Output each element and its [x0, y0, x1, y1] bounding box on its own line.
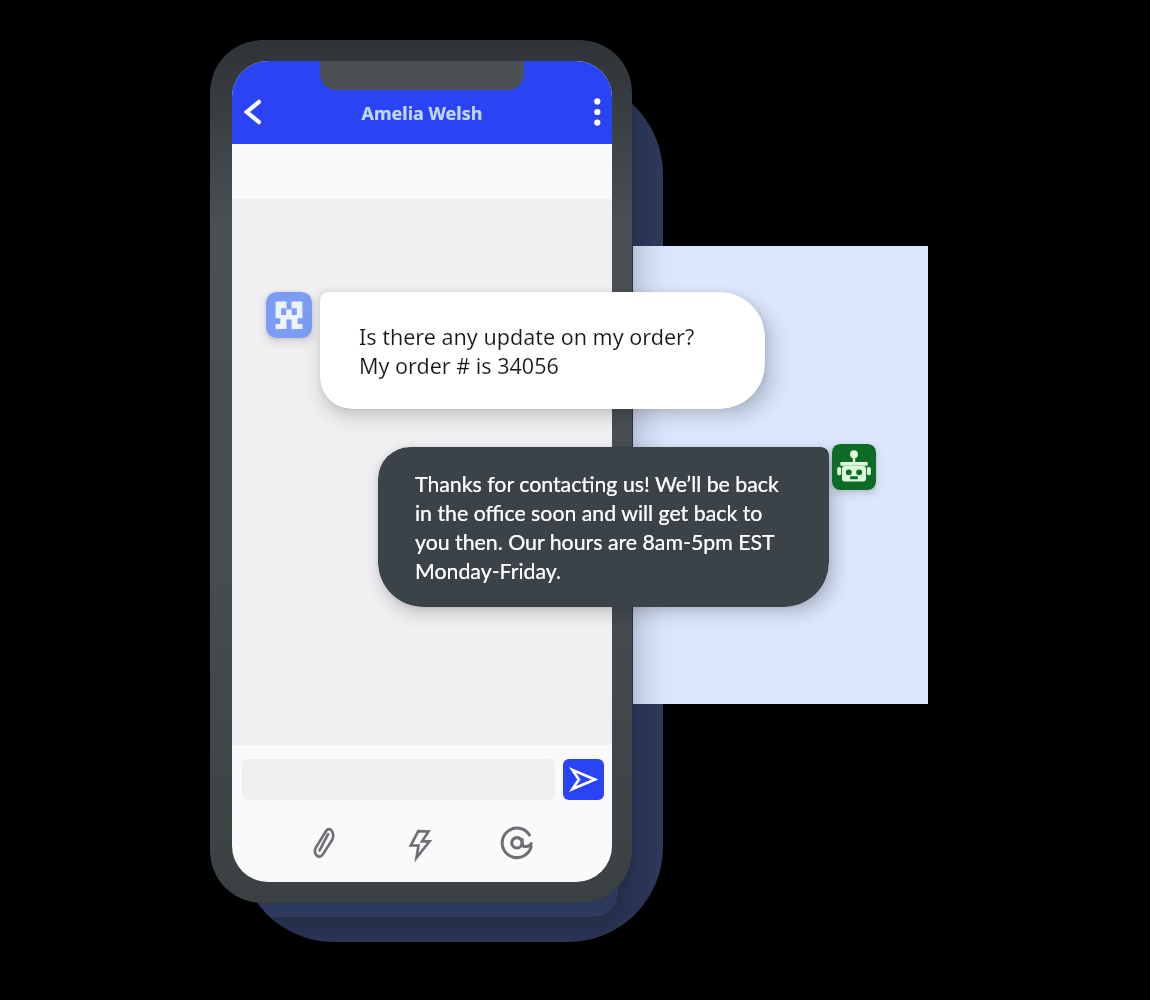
button[interactable]: Mention: [494, 818, 542, 866]
button[interactable]: Send: [563, 759, 604, 800]
staticText: Is there any update on my order? My orde…: [359, 322, 695, 380]
button[interactable]: More options: [575, 88, 612, 136]
button[interactable]: Attach file: [300, 818, 348, 866]
button[interactable]: Back: [232, 88, 282, 136]
staticText: Amelia Welsh: [232, 101, 612, 126]
button[interactable]: Quick replies: [397, 818, 445, 866]
staticText: Thanks for contacting us! We’ll be back …: [415, 471, 795, 583]
